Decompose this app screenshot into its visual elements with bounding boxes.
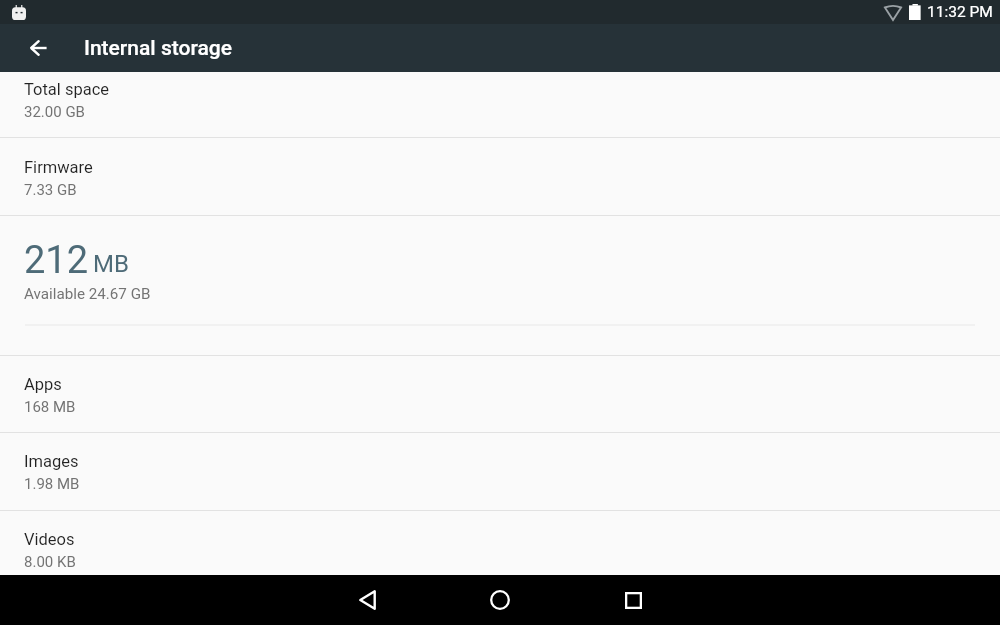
staticText: 212: [24, 238, 89, 283]
staticText: Available 24.67 GB: [24, 285, 151, 303]
staticText: MB: [93, 250, 129, 278]
button[interactable]: Recent apps: [597, 575, 669, 625]
staticText: 7.33 GB: [24, 181, 77, 199]
staticText: 32.00 GB: [24, 103, 85, 121]
button[interactable]: Videos: [0, 511, 1000, 575]
staticText: Firmware: [24, 158, 93, 177]
staticText: 168 MB: [24, 398, 76, 416]
staticText: Internal storage: [84, 36, 233, 61]
button[interactable]: Home: [464, 575, 536, 625]
staticText: 8.00 KB: [24, 553, 76, 571]
button[interactable]: Images: [0, 433, 1000, 511]
staticText: 11:32 PM: [927, 3, 993, 21]
staticText: Images: [24, 452, 79, 471]
staticText: 1.98 MB: [24, 475, 80, 493]
button[interactable]: Total space: [0, 72, 1000, 138]
button[interactable]: Firmware: [0, 138, 1000, 216]
staticText: Apps: [24, 375, 62, 394]
staticText: Videos: [24, 530, 75, 549]
button[interactable]: Back: [331, 575, 403, 625]
button[interactable]: Apps: [0, 356, 1000, 433]
staticText: Total space: [24, 80, 110, 99]
button[interactable]: Back: [14, 24, 62, 72]
